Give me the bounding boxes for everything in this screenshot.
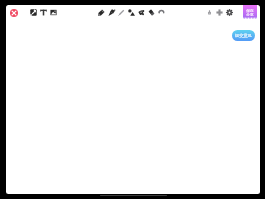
button[interactable]: Close — [8, 7, 19, 18]
button[interactable]: Settings — [224, 7, 234, 17]
button[interactable]: Highlighter — [116, 7, 126, 17]
button[interactable]: Mosaic — [136, 7, 146, 17]
button[interactable]: Shapes — [126, 7, 136, 17]
button[interactable]: Image — [48, 7, 58, 17]
button[interactable]: Crop — [28, 7, 38, 17]
button[interactable]: Move — [214, 7, 224, 17]
button[interactable]: Undo — [156, 7, 166, 17]
button[interactable]: Clear all — [204, 7, 214, 17]
staticText: 提交意见 — [235, 33, 252, 38]
button[interactable]: Text — [38, 7, 48, 17]
button[interactable]: Eraser — [146, 7, 156, 17]
button[interactable]: Marker — [106, 7, 116, 17]
button[interactable]: Pen — [96, 7, 106, 17]
button[interactable]: Save and share — [243, 5, 257, 19]
button[interactable]: 提交意见 — [232, 30, 255, 41]
staticText: 保存 分享 — [246, 8, 254, 18]
